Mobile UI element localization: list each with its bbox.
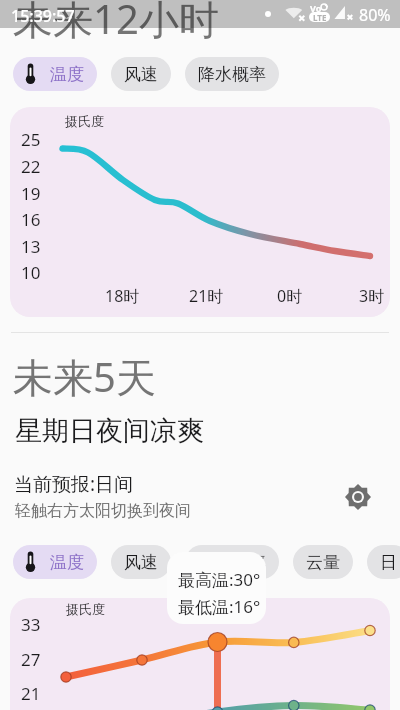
staticText: 未来5天 (13, 349, 156, 404)
staticText: 未来12小时 (13, 0, 219, 46)
staticText: 3时 (359, 285, 385, 307)
staticText: 最低温:16° (178, 595, 261, 618)
staticText: 16 (21, 208, 41, 231)
button[interactable]: 温度 (13, 545, 97, 579)
staticText: 25 (21, 128, 41, 151)
button[interactable]: 风速 (111, 545, 171, 579)
button[interactable]: 风速 (111, 57, 171, 91)
staticText: 0时 (277, 285, 303, 307)
staticText: 星期日夜间凉爽 (15, 414, 204, 448)
staticText: 21时 (189, 285, 224, 307)
staticText: 15:39:57 (11, 5, 75, 27)
staticText: 13 (21, 235, 41, 258)
staticText: 10 (21, 261, 41, 284)
staticText: Vo (310, 2, 322, 14)
button[interactable]: 切换到夜间 (344, 483, 372, 511)
staticText: 摄氏度 (65, 113, 104, 129)
staticText: 最高温:30° (178, 568, 261, 591)
staticText: 温度 (50, 552, 84, 573)
staticText: 温度 (50, 64, 84, 85)
staticText: 摄氏度 (66, 601, 105, 617)
staticText: 19 (21, 182, 41, 205)
button[interactable]: 降水概率 (185, 545, 279, 579)
button[interactable]: 云量 (293, 545, 353, 579)
staticText: 轻触右方太阳切换到夜间 (15, 501, 191, 521)
staticText: 27 (21, 648, 41, 671)
staticText: 风速 (124, 64, 158, 85)
button[interactable]: 温度 (13, 57, 97, 91)
staticText: 21 (21, 682, 41, 705)
staticText: 日 (380, 552, 397, 573)
button[interactable]: 降水概率 (185, 57, 279, 91)
staticText: 22 (21, 155, 41, 178)
staticText: 降水概率 (198, 552, 266, 573)
staticText: 降水概率 (198, 64, 266, 85)
button[interactable]: 日 (367, 545, 400, 579)
staticText: 18时 (105, 285, 140, 307)
staticText: 云量 (306, 552, 340, 573)
staticText: 当前预报:日间 (14, 471, 134, 497)
staticText: 33 (21, 613, 41, 636)
staticText: 风速 (124, 552, 158, 573)
staticText: LTE (313, 12, 327, 22)
staticText: 80% (359, 4, 391, 26)
